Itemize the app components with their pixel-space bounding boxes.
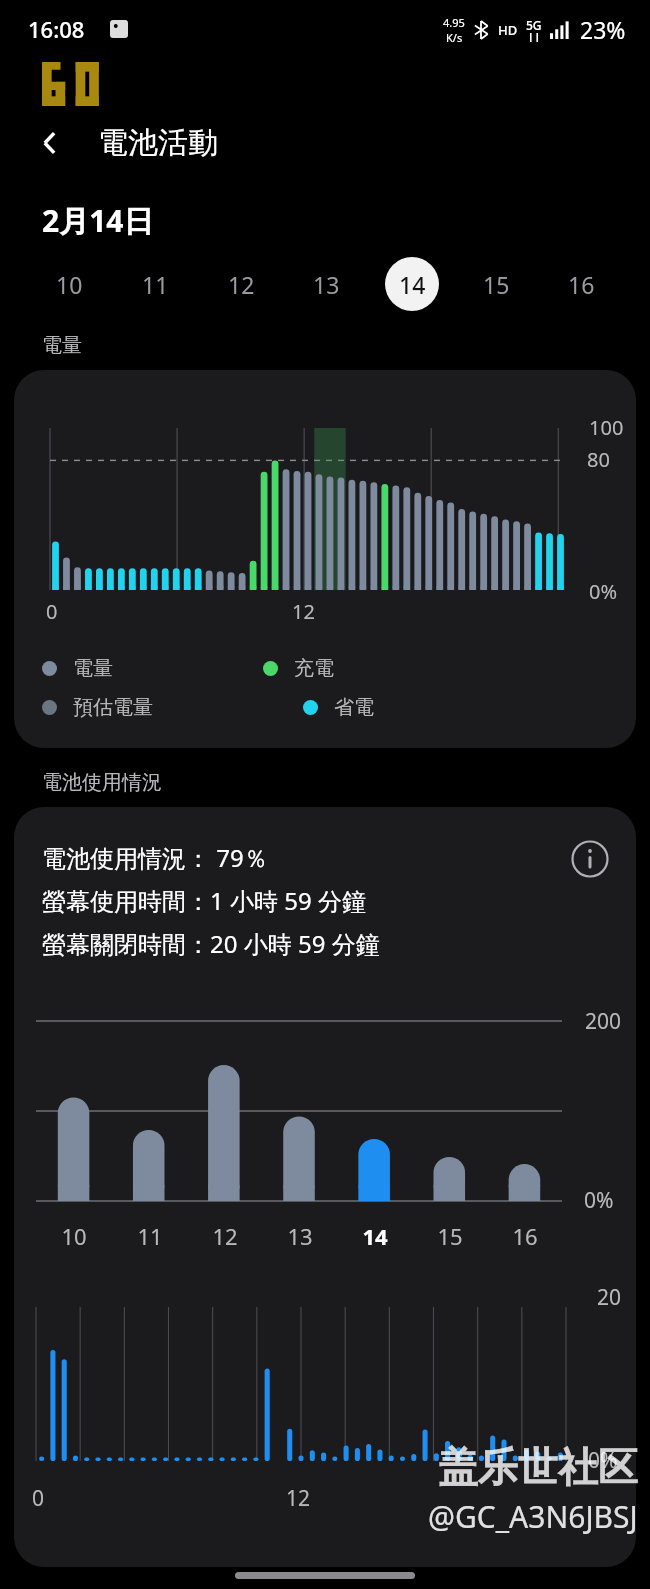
staticText: @GC_A3N6JBSJ <box>428 1496 638 1537</box>
staticText: 16 <box>568 269 595 300</box>
staticText: 0% <box>584 1186 614 1215</box>
staticText: 23% <box>580 14 626 45</box>
staticText: 電池使用情況 <box>42 770 162 795</box>
staticText: 10 <box>61 1221 87 1251</box>
staticText: 80 <box>587 446 610 473</box>
staticText: 12 <box>286 1484 311 1513</box>
staticText: 盖乐世社区 <box>438 1442 638 1492</box>
staticText: 螢幕使用時間：1 小時 59 分鐘 <box>42 884 366 917</box>
button[interactable]: 11 <box>112 255 198 313</box>
staticText: 電量 <box>42 333 82 358</box>
staticText: K/s <box>446 30 463 45</box>
staticText: 2月14日 <box>42 200 154 241</box>
button[interactable]: 16 <box>539 255 624 313</box>
staticText: 16:08 <box>28 14 85 44</box>
button[interactable]: 電池使用情況： 79％ <box>14 807 636 1567</box>
staticText: 充電 <box>294 656 334 681</box>
button[interactable]: 10 <box>26 255 112 313</box>
staticText: 20 <box>597 1283 622 1312</box>
button[interactable]: 13 <box>284 255 369 313</box>
staticText: 0% <box>589 578 618 605</box>
staticText: HD <box>498 21 518 39</box>
staticText: 13 <box>313 269 340 300</box>
button[interactable]: 12 <box>198 255 284 313</box>
staticText: 0 <box>46 598 58 625</box>
staticText: 省電 <box>334 695 374 720</box>
staticText: 15 <box>483 269 510 300</box>
staticText: 100 <box>589 414 624 441</box>
staticText: 螢幕關閉時間：20 小時 59 分鐘 <box>42 927 380 960</box>
staticText: 12 <box>228 269 255 300</box>
staticText: 11 <box>142 269 169 300</box>
staticText: 電池活動 <box>98 124 218 162</box>
staticText: 電池使用情況： 79％ <box>42 841 268 874</box>
staticText: 14 <box>362 1221 388 1251</box>
button[interactable]: 15 <box>454 255 539 313</box>
button[interactable]: 返回 <box>22 115 78 171</box>
staticText: 電量 <box>73 656 113 681</box>
staticText: 0 <box>32 1484 45 1513</box>
staticText: 4.95 <box>443 15 465 30</box>
staticText: 14 <box>399 269 426 300</box>
staticText: 15 <box>437 1221 463 1251</box>
button[interactable]: 100 <box>14 370 636 748</box>
button[interactable]: 14 <box>369 255 454 313</box>
staticText: 12 <box>292 598 315 625</box>
button[interactable]: 資訊 <box>564 833 616 885</box>
staticText: 預估電量 <box>73 695 153 720</box>
staticText: 5G <box>526 17 542 33</box>
staticText: 16 <box>512 1221 538 1251</box>
staticText: 12 <box>212 1221 238 1251</box>
staticText: 10 <box>56 269 83 300</box>
staticText: 11 <box>137 1221 163 1251</box>
staticText: 13 <box>287 1221 313 1251</box>
staticText: 200 <box>585 1007 622 1036</box>
staticText: 0% <box>588 1446 618 1475</box>
